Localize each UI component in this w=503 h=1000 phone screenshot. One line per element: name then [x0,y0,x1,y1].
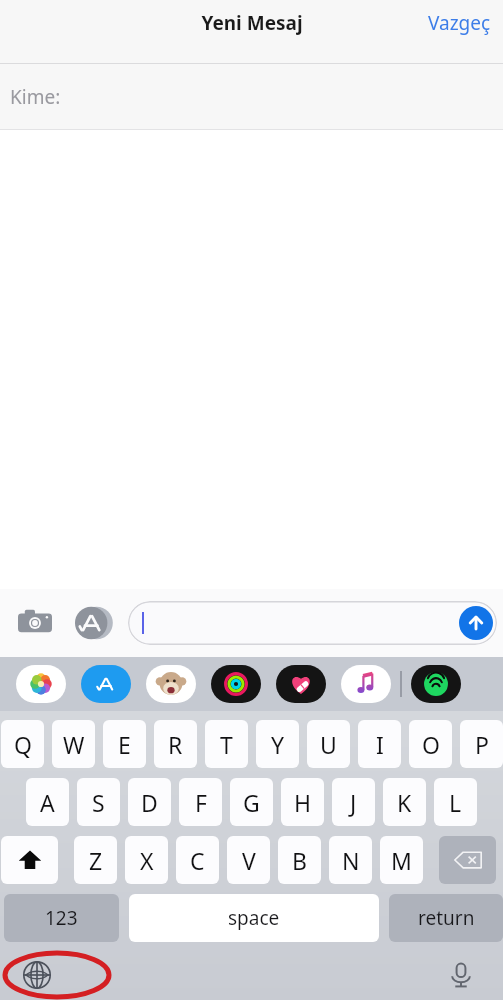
button[interactable]: Z [74,836,117,884]
staticText: Q [14,729,32,760]
staticText: V [242,845,256,876]
staticText: 123 [45,905,78,931]
button[interactable]: H [281,778,324,826]
staticText: X [140,845,154,876]
button[interactable]: W [52,720,95,768]
staticText: W [63,729,85,760]
button[interactable]: Shift [1,836,58,884]
button[interactable]: Send [459,606,493,640]
staticText: Yeni Mesaj [201,10,303,36]
staticText: H [294,787,312,818]
button[interactable]: J [332,778,375,826]
button[interactable]: E [103,720,146,768]
button[interactable]: P [460,720,503,768]
button[interactable]: Send [128,601,497,645]
button[interactable]: Kime: [0,64,503,130]
button[interactable]: X [125,836,168,884]
staticText: T [220,729,233,760]
button[interactable]: iMessage app [16,665,66,703]
button[interactable]: F [179,778,222,826]
button[interactable]: space [129,894,379,942]
button[interactable]: M [380,836,423,884]
button[interactable]: Y [256,720,299,768]
button[interactable]: Change keyboard language [10,950,64,1000]
staticText: S [92,787,105,818]
button[interactable]: iMessage app [211,665,261,703]
button[interactable]: Vazgeç [416,4,503,42]
staticText: space [228,905,280,931]
staticText: O [422,729,440,760]
button[interactable]: Q [1,720,44,768]
button[interactable]: D [128,778,171,826]
button[interactable]: 123 [4,894,119,942]
staticText: Kime: [10,84,61,110]
button[interactable]: N [329,836,372,884]
button[interactable]: C [176,836,219,884]
staticText: U [320,729,337,760]
button[interactable]: O [409,720,452,768]
staticText: L [449,787,462,818]
button[interactable]: S [77,778,120,826]
button[interactable]: iMessage app [341,665,391,703]
button[interactable]: G [230,778,273,826]
staticText: D [141,787,158,818]
staticText: Y [271,729,285,760]
button[interactable]: Dictation [439,953,483,997]
staticText: F [195,787,207,818]
staticText: P [475,729,489,760]
staticText: G [243,787,260,818]
staticText: M [391,845,412,876]
staticText: I [376,729,384,760]
staticText: Vazgeç [428,10,491,36]
button[interactable]: iMessage app [146,665,196,703]
staticText: C [190,845,205,876]
staticText: R [168,729,183,760]
button[interactable]: K [383,778,426,826]
button[interactable]: App Store [72,602,114,644]
button[interactable]: U [307,720,350,768]
button[interactable]: L [434,778,477,826]
staticText: A [40,787,55,818]
button[interactable]: Camera [14,602,56,644]
button[interactable]: iMessage app [411,665,461,703]
button[interactable]: T [205,720,248,768]
staticText: B [292,845,307,876]
button[interactable]: return [389,894,503,942]
button[interactable]: Backspace [439,836,496,884]
button[interactable]: V [227,836,270,884]
button[interactable]: R [154,720,197,768]
staticText: K [397,787,412,818]
staticText: E [118,729,131,760]
button[interactable]: iMessage app [81,665,131,703]
staticText: J [350,787,357,818]
button[interactable]: A [26,778,69,826]
staticText: Z [89,845,103,876]
staticText: return [418,905,475,931]
staticText: N [342,845,360,876]
button[interactable]: B [278,836,321,884]
button[interactable]: iMessage app [276,665,326,703]
button[interactable]: I [358,720,401,768]
